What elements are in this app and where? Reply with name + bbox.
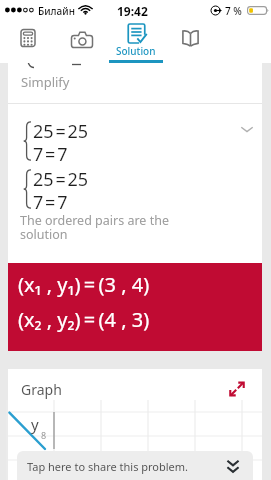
staticText: Solution xyxy=(116,44,156,58)
other: Collapse share panel xyxy=(223,456,243,476)
staticText: Tap here to share this problem. xyxy=(27,459,189,474)
button[interactable]: Calculator xyxy=(0,20,55,63)
staticText: (x₂ , y₂) = (4 , 3) xyxy=(18,306,150,333)
staticText: 25 = 25 xyxy=(33,167,89,192)
staticText: 7 = 7 xyxy=(33,142,68,167)
button[interactable]: Solution xyxy=(109,20,163,63)
staticText: 8 xyxy=(41,429,47,441)
staticText: The ordered pairs are the solution xyxy=(20,212,169,243)
button[interactable]: Collapse step xyxy=(236,118,258,140)
button[interactable]: Expand graph xyxy=(229,381,245,397)
staticText: Graph xyxy=(21,380,62,399)
staticText: 25 = 25 xyxy=(33,119,89,144)
staticText: (x₁ , y₁) = (3 , 4) xyxy=(18,271,150,298)
staticText: Simplify xyxy=(21,73,70,91)
staticText: 7 = 7 xyxy=(33,190,68,215)
staticText: Билайн xyxy=(38,4,75,18)
staticText: 7 % xyxy=(225,4,242,18)
button[interactable]: Tap here to share this problem. xyxy=(17,451,253,480)
staticText: 19:42 xyxy=(117,3,148,19)
button[interactable]: Book xyxy=(163,20,217,63)
button[interactable]: Camera xyxy=(55,20,109,63)
staticText: y xyxy=(31,414,39,434)
